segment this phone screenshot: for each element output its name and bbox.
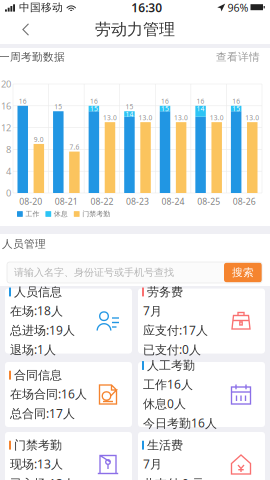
staticText: 应支付:17人 xyxy=(143,322,208,338)
staticText: 13.0 xyxy=(139,113,153,122)
button[interactable]: 搜索 xyxy=(224,263,262,282)
staticText: 共支付 0 元 xyxy=(143,475,204,480)
staticText: 08-22 xyxy=(90,196,113,207)
staticText: 16 xyxy=(161,97,169,106)
staticText: 劳动力管理 xyxy=(95,19,175,40)
staticText: 7月 xyxy=(143,302,162,319)
staticText: 人员信息 xyxy=(14,284,62,299)
staticText: 总合同:17人 xyxy=(10,405,75,421)
staticText: 13.0 xyxy=(210,113,224,122)
staticText: 已支付:0人 xyxy=(143,341,201,357)
staticText: 4 xyxy=(6,165,11,177)
staticText: 休息 xyxy=(54,210,68,218)
staticText: 15 xyxy=(54,102,62,111)
staticText: 门禁考勤 xyxy=(82,210,110,218)
staticText: 12 xyxy=(1,121,11,134)
staticText: 总进场:19人 xyxy=(10,322,75,338)
staticText: 中国移动 xyxy=(19,1,63,14)
button[interactable]: 门禁考勤 xyxy=(5,432,132,480)
staticText: 9.0 xyxy=(34,135,44,144)
staticText: 08-20 xyxy=(19,196,42,207)
staticText: 08-25 xyxy=(197,196,220,207)
staticText: 08-26 xyxy=(233,196,256,207)
button[interactable]: 查看详情 xyxy=(208,46,268,68)
staticText: 生活费 xyxy=(147,438,183,453)
staticText: 在场:18人 xyxy=(10,302,63,319)
staticText: 现场:13人 xyxy=(10,456,63,472)
staticText: 在场合同:16人 xyxy=(10,386,87,402)
staticText: 20 xyxy=(1,78,11,90)
staticText: 14 xyxy=(125,109,133,119)
staticText: 08-24 xyxy=(162,196,185,207)
staticText: 搜索 xyxy=(232,266,254,279)
staticText: 劳务费 xyxy=(147,284,183,299)
staticText: 人工考勤 xyxy=(147,358,195,373)
staticText: 13.0 xyxy=(103,113,117,122)
staticText: 合同信息 xyxy=(14,368,62,383)
staticText: 人员管理 xyxy=(2,237,46,251)
staticText: 查看详情 xyxy=(216,50,260,64)
staticText: 已入场:13人 xyxy=(10,475,75,480)
staticText: 13.0 xyxy=(174,113,188,122)
staticText: 15 xyxy=(90,104,98,113)
staticText: 工作 xyxy=(25,210,39,218)
staticText: 休息0人 xyxy=(143,395,186,412)
staticText: 16 xyxy=(19,97,27,106)
button[interactable]: 人工考勤 xyxy=(138,362,265,427)
staticText: 今日考勤16人 xyxy=(143,415,217,431)
staticText: 请输入名字、身份证号或手机号查找 xyxy=(14,266,174,279)
button[interactable]: 劳务费 xyxy=(138,288,265,353)
staticText: 15 xyxy=(161,104,169,113)
staticText: 工作16人 xyxy=(143,376,193,392)
staticText: 08-23 xyxy=(126,196,149,207)
button[interactable]: 合同信息 xyxy=(5,362,132,427)
staticText: 一周考勤数据 xyxy=(0,50,65,64)
staticText: 7.6 xyxy=(69,142,79,151)
staticText: 14 xyxy=(197,104,205,113)
staticText: 15 xyxy=(125,102,133,111)
staticText: 15 xyxy=(232,104,240,113)
staticText: 16 xyxy=(197,97,205,106)
button[interactable]: 返回 xyxy=(0,15,46,44)
button[interactable]: 人员信息 xyxy=(5,288,132,353)
staticText: 8 xyxy=(6,143,11,156)
staticText: 13.0 xyxy=(245,113,259,122)
staticText: 16 xyxy=(232,97,240,106)
button[interactable]: 生活费 xyxy=(138,432,265,480)
staticText: 08-21 xyxy=(55,196,78,207)
staticText: 96% xyxy=(227,0,248,15)
staticText: 门禁考勤 xyxy=(14,438,62,453)
staticText: 16 xyxy=(1,99,11,112)
staticText: 16 xyxy=(90,97,98,106)
staticText: 退场:1人 xyxy=(10,341,56,357)
staticText: 7月 xyxy=(143,456,162,472)
staticText: 16:30 xyxy=(131,0,162,16)
staticText: 0 xyxy=(6,187,11,199)
